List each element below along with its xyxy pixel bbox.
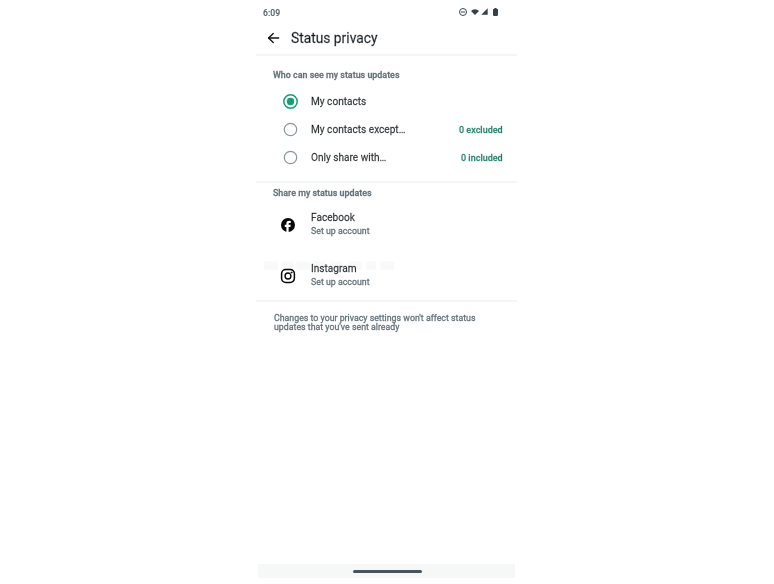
- staticText: Set up account: [311, 226, 370, 236]
- staticText: Set up account: [311, 277, 370, 287]
- button[interactable]: Only share with…: [256, 143, 517, 171]
- staticText: Status privacy: [291, 30, 378, 46]
- button[interactable]: Instagram: [256, 255, 517, 295]
- staticText: Changes to your privacy settings won't a…: [274, 313, 482, 332]
- staticText: 0 included: [461, 153, 503, 164]
- button[interactable]: Back: [261, 26, 285, 50]
- staticText: 0 excluded: [459, 125, 503, 136]
- button[interactable]: Facebook: [256, 204, 517, 244]
- staticText: Share my status updates: [273, 188, 372, 198]
- staticText: My contacts except…: [311, 124, 406, 136]
- staticText: My contacts: [311, 96, 367, 108]
- staticText: Only share with…: [311, 152, 387, 164]
- staticText: Facebook: [311, 212, 355, 224]
- staticText: 6:09: [263, 8, 281, 18]
- staticText: Who can see my status updates: [273, 70, 400, 80]
- button[interactable]: My contacts: [256, 87, 517, 115]
- button[interactable]: My contacts except…: [256, 115, 517, 143]
- staticText: Instagram: [311, 263, 357, 275]
